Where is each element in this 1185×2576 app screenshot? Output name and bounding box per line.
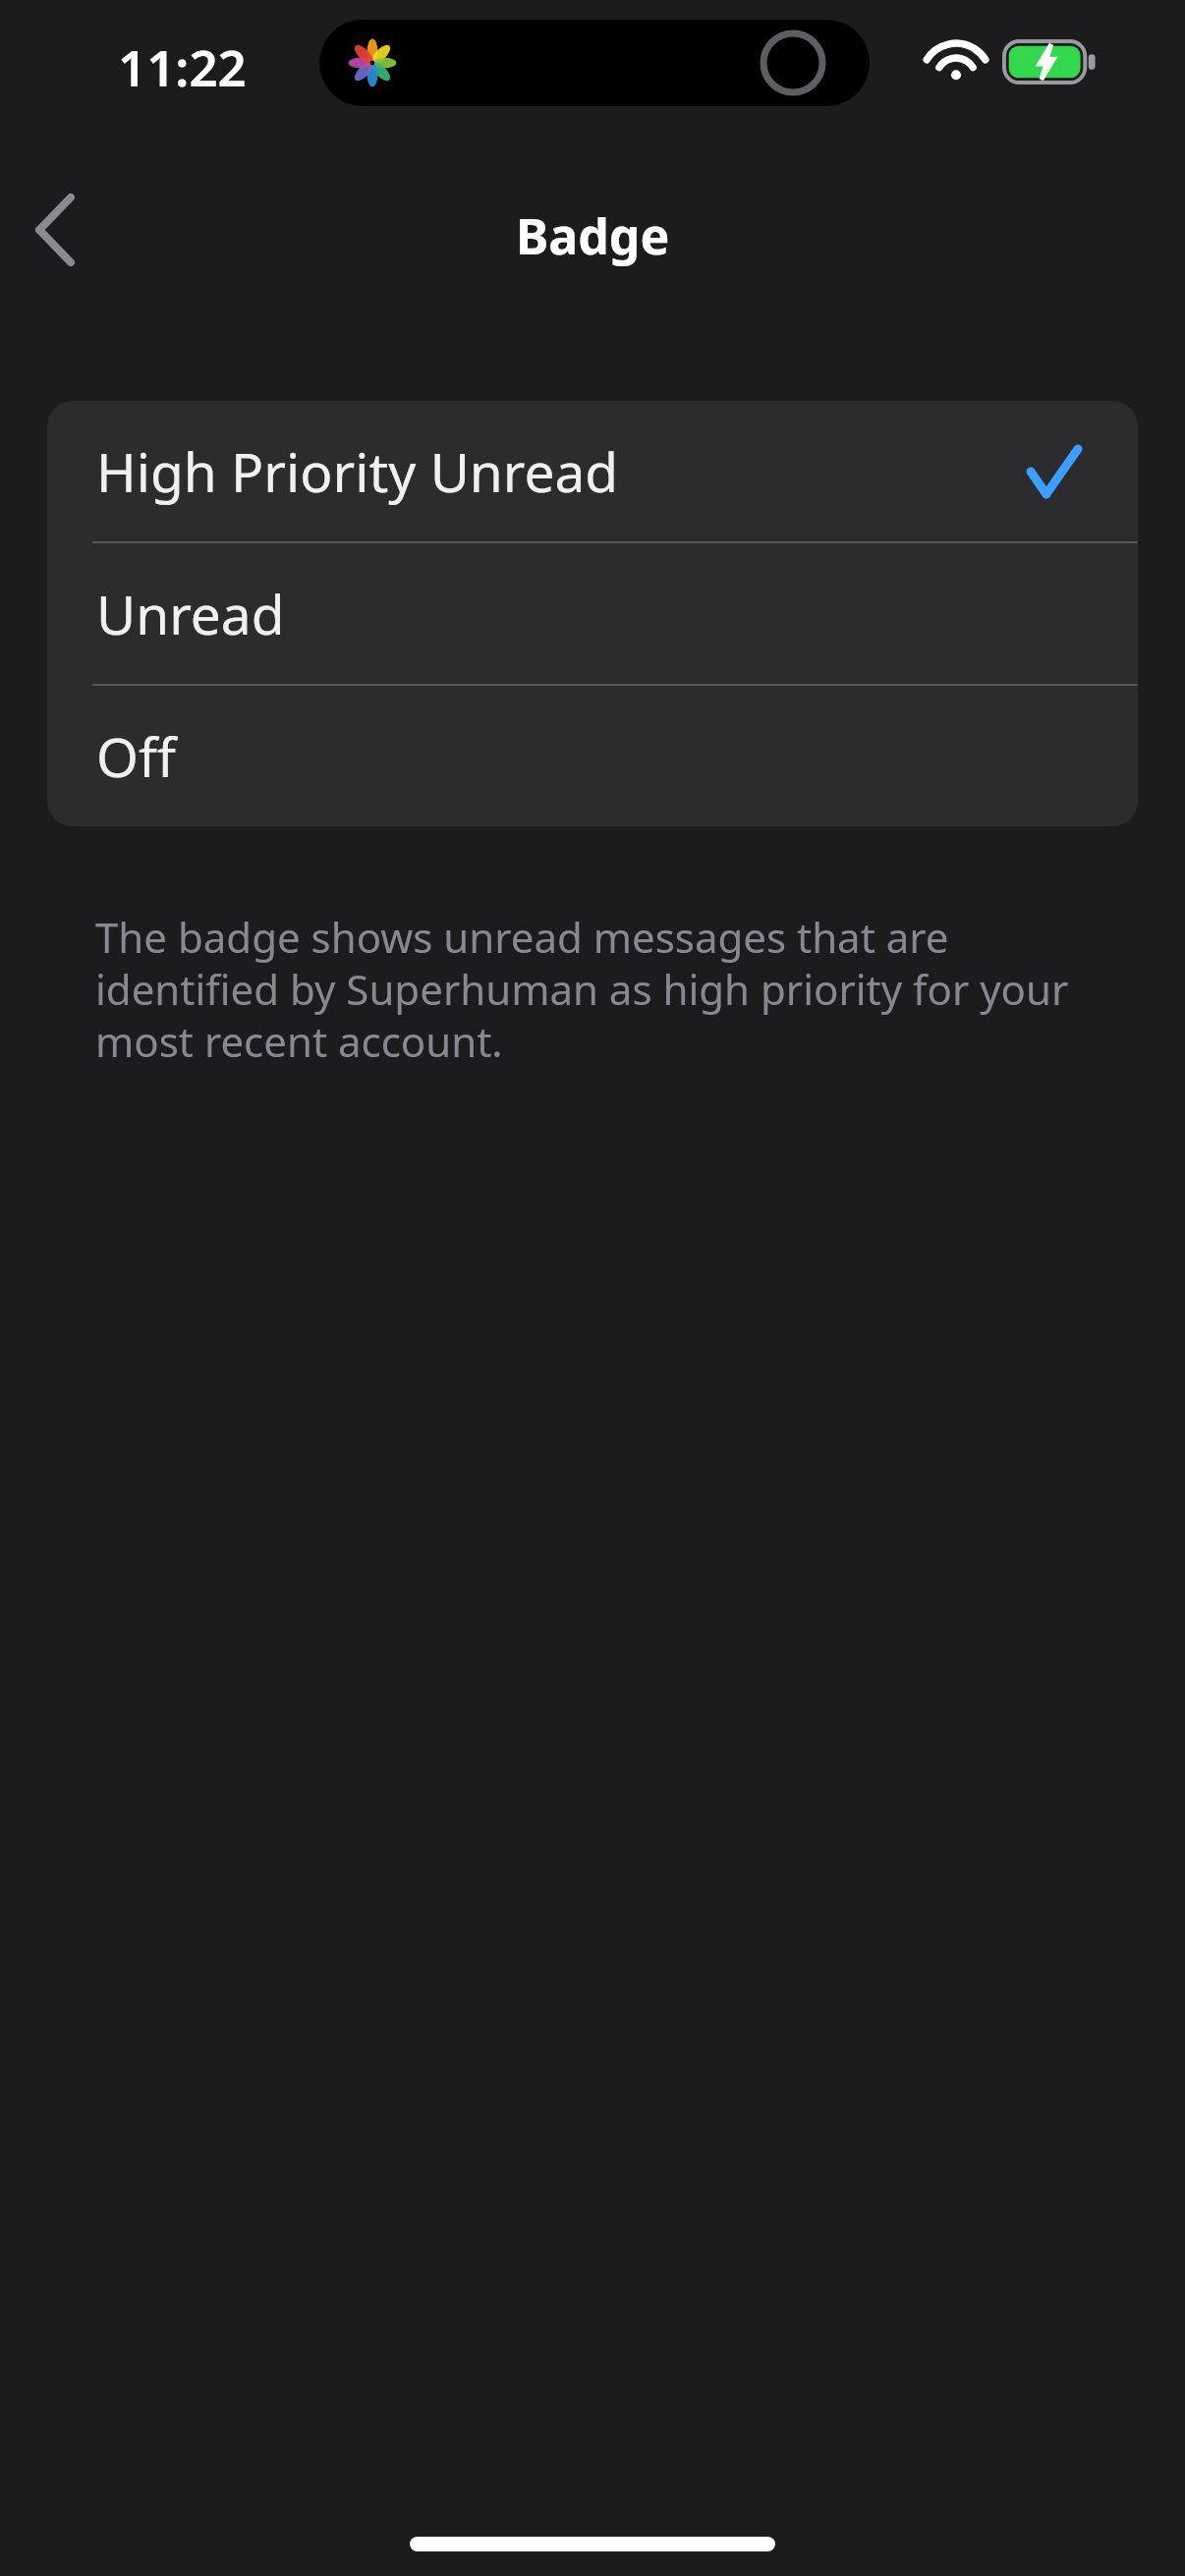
button[interactable]: Back (0, 175, 110, 285)
button[interactable]: Off (47, 686, 1138, 826)
staticText: Unread (96, 577, 285, 650)
button[interactable]: High Priority Unread (47, 401, 1138, 541)
button[interactable]: Unread (47, 543, 1138, 684)
staticText: High Priority Unread (96, 434, 619, 508)
staticText: The badge shows unread messages that are… (95, 909, 1086, 1069)
staticText: Badge (516, 202, 670, 269)
staticText: 11:22 (118, 32, 247, 100)
other: Selected (1031, 449, 1078, 494)
staticText: Off (96, 719, 176, 793)
